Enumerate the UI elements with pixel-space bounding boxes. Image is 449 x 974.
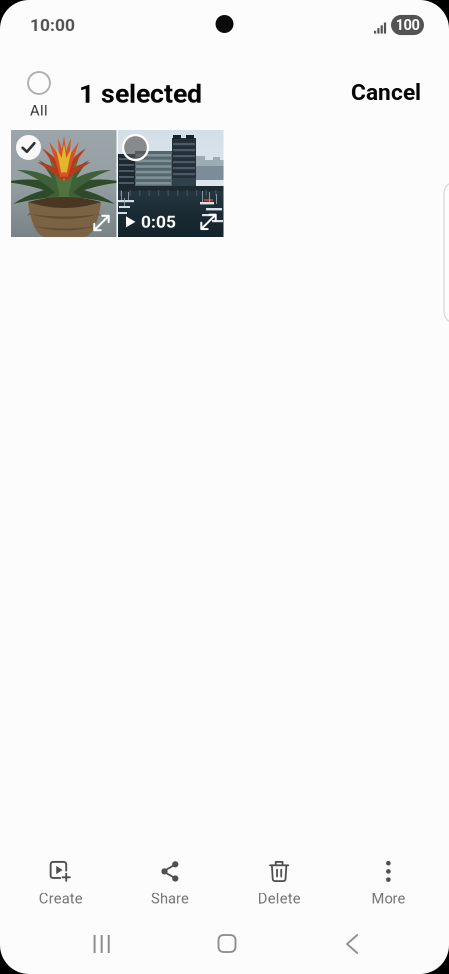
button[interactable]: Create bbox=[6, 849, 115, 915]
staticText: 10:00 bbox=[30, 15, 75, 35]
staticText: Share bbox=[151, 890, 189, 907]
button[interactable]: Home bbox=[164, 912, 290, 974]
button[interactable]: Back bbox=[290, 912, 415, 974]
staticText: Create bbox=[39, 890, 83, 907]
staticText: 100 bbox=[395, 16, 419, 34]
button[interactable]: More bbox=[334, 849, 443, 915]
button[interactable] bbox=[11, 130, 116, 237]
staticText: Cancel bbox=[351, 79, 421, 106]
button[interactable]: Cancel bbox=[341, 72, 431, 113]
staticText: Delete bbox=[258, 890, 301, 907]
staticText: More bbox=[371, 890, 405, 907]
button[interactable]: Share bbox=[115, 849, 224, 915]
staticText: 1 selected bbox=[79, 78, 202, 109]
button[interactable]: Recent apps bbox=[39, 912, 164, 974]
button[interactable]: All bbox=[14, 72, 64, 119]
staticText: 0:05 bbox=[141, 212, 176, 232]
button[interactable]: Delete bbox=[224, 849, 334, 915]
staticText: All bbox=[30, 102, 48, 119]
button[interactable]: 0:05 bbox=[118, 130, 223, 237]
